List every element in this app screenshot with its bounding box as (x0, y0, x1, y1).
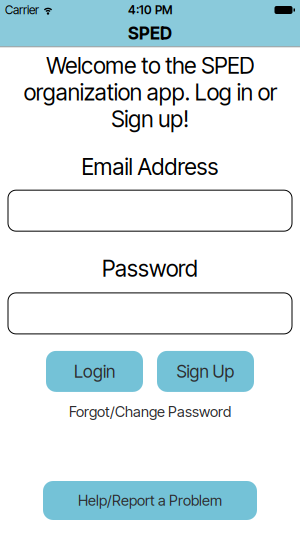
button[interactable]: Help/Report a Problem (43, 481, 257, 520)
staticText: Login (74, 361, 115, 382)
staticText: Forgot/Change Password (69, 403, 231, 420)
button[interactable]: Sign Up (157, 351, 254, 392)
staticText: Password (102, 255, 198, 282)
staticText: SPED (128, 23, 172, 43)
staticText: Carrier (5, 3, 39, 17)
staticText: Sign Up (176, 361, 234, 382)
staticText: Welcome to the SPED organization app. Lo… (23, 52, 276, 132)
staticText: Help/Report a Problem (78, 492, 222, 509)
staticText: Email Address (81, 153, 218, 180)
button[interactable]: Login (46, 351, 143, 392)
button[interactable]: Forgot/Change Password (67, 401, 233, 422)
staticText: 4:10 PM (128, 3, 172, 17)
